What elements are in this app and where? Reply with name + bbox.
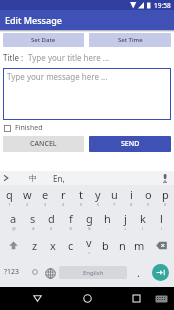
staticText: y	[95, 187, 101, 202]
button[interactable]: Finished	[3, 123, 43, 133]
staticText: g	[86, 211, 93, 226]
button[interactable]	[0, 233, 26, 257]
staticText: Title :	[3, 52, 24, 63]
staticText: %	[69, 226, 73, 231]
staticText: English	[83, 269, 104, 277]
button[interactable]: CANCEL	[3, 136, 84, 152]
button[interactable]	[155, 295, 168, 303]
staticText: -	[107, 226, 109, 231]
button[interactable]: k	[134, 209, 152, 233]
button[interactable]: Type your message here ...	[3, 68, 171, 120]
button[interactable]: x	[44, 233, 62, 257]
button[interactable]: f	[61, 209, 80, 233]
staticText: v	[86, 235, 92, 250]
staticText: b	[102, 238, 109, 253]
button[interactable]	[160, 173, 170, 184]
button[interactable]: r	[54, 185, 72, 209]
button[interactable]: c	[62, 233, 80, 257]
button[interactable]: s	[23, 209, 42, 233]
button[interactable]: w	[18, 185, 36, 209]
staticText: $	[50, 226, 53, 231]
staticText: (	[142, 226, 144, 231]
button[interactable]: y	[89, 185, 106, 209]
button[interactable]: z	[26, 233, 44, 257]
staticText: w	[23, 187, 32, 202]
button[interactable]: b	[97, 233, 114, 257]
staticText: m	[134, 238, 145, 253]
button[interactable]: t	[72, 185, 89, 209]
staticText: u	[111, 187, 118, 202]
button[interactable]: v	[80, 233, 97, 257]
button[interactable]: o	[140, 185, 157, 209]
staticText: Set Date	[31, 36, 56, 44]
staticText: Type your message here ...	[7, 71, 108, 82]
staticText: c	[68, 238, 74, 253]
staticText: @	[12, 226, 16, 231]
staticText: Type your title here ...	[28, 52, 110, 63]
button[interactable]	[2, 173, 10, 183]
staticText: 7	[113, 202, 116, 207]
staticText: x	[50, 238, 56, 253]
button[interactable]: Set Date	[3, 33, 84, 47]
staticText: +	[124, 226, 127, 231]
staticText: 0	[164, 202, 167, 207]
button[interactable]: En,	[53, 173, 65, 184]
staticText: 9	[147, 202, 150, 207]
staticText: 6	[97, 202, 100, 207]
staticText: t	[79, 187, 83, 202]
staticText: d	[48, 211, 55, 226]
button[interactable]: p	[157, 185, 174, 209]
button[interactable]: 中	[29, 173, 37, 183]
staticText: ?123	[4, 267, 20, 277]
staticText: a	[10, 211, 17, 226]
staticText: 2	[26, 202, 29, 207]
staticText: CANCEL	[30, 139, 57, 149]
button[interactable]: SEND	[89, 136, 171, 152]
staticText: 19:58	[154, 1, 171, 10]
staticText: z	[32, 238, 38, 253]
button[interactable]: a	[4, 209, 23, 233]
button[interactable]	[32, 269, 38, 275]
staticText: k	[140, 211, 146, 226]
button[interactable]: i	[123, 185, 140, 209]
button[interactable]: Set Time	[89, 33, 171, 47]
button[interactable]: q	[0, 185, 18, 209]
staticText: o	[145, 187, 152, 202]
staticText: s	[30, 211, 36, 226]
staticText: h	[104, 211, 111, 226]
button[interactable]	[132, 294, 141, 303]
staticText: #	[32, 226, 35, 231]
button[interactable]: d	[42, 209, 61, 233]
staticText: p	[162, 187, 169, 202]
staticText: i	[130, 187, 133, 202]
button[interactable]	[83, 294, 92, 303]
button[interactable]	[152, 264, 169, 281]
button[interactable]: m	[131, 233, 148, 257]
staticText: n	[119, 238, 126, 253]
staticText: SEND	[121, 139, 140, 149]
button[interactable]: g	[80, 209, 98, 233]
staticText: r	[61, 187, 66, 202]
button[interactable]: ?123	[2, 257, 22, 287]
button[interactable]: u	[106, 185, 123, 209]
staticText: Finished	[15, 123, 43, 133]
staticText: l	[160, 211, 163, 226]
button[interactable]: English	[59, 266, 127, 279]
button[interactable]: n	[114, 233, 131, 257]
staticText: f	[69, 211, 73, 226]
button[interactable]: e	[36, 185, 54, 209]
button[interactable]: j	[116, 209, 134, 233]
button[interactable]	[33, 295, 42, 302]
button[interactable]: .	[132, 257, 144, 287]
staticText: &	[88, 226, 91, 231]
staticText: q	[6, 187, 13, 202]
staticText: )	[161, 226, 163, 231]
button[interactable]: l	[152, 209, 170, 233]
staticText: 5	[80, 202, 83, 207]
staticText: Edit Message	[5, 14, 62, 26]
button[interactable]: h	[98, 209, 116, 233]
staticText: e	[42, 187, 49, 202]
button[interactable]	[45, 268, 56, 279]
button[interactable]	[148, 233, 174, 257]
staticText: 8	[130, 202, 133, 207]
